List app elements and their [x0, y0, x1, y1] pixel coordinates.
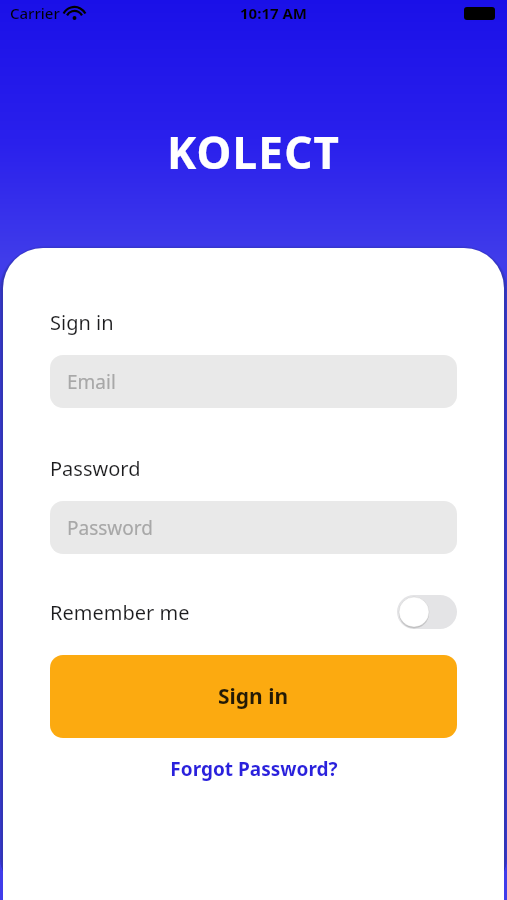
staticText: KOLECT: [167, 122, 341, 182]
staticText: Sign in: [218, 682, 289, 711]
staticText: 10:17 AM: [240, 3, 307, 23]
button[interactable]: Remember me toggle: [397, 595, 457, 629]
staticText: Password: [67, 515, 153, 541]
button[interactable]: Sign in: [50, 655, 457, 738]
button[interactable]: Forgot Password?: [50, 752, 457, 786]
staticText: Carrier: [10, 3, 60, 23]
button[interactable]: Remember me: [50, 591, 457, 633]
button[interactable]: Email: [50, 355, 457, 408]
button[interactable]: Password: [50, 501, 457, 554]
staticText: Remember me: [50, 599, 190, 626]
staticText: Password: [50, 455, 141, 482]
staticText: Forgot Password?: [170, 756, 338, 782]
staticText: Email: [67, 369, 116, 395]
staticText: Sign in: [50, 309, 114, 336]
